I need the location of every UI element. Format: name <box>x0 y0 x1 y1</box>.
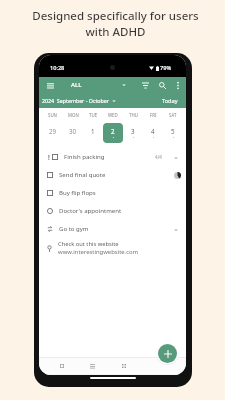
staticText: THU <box>129 112 138 118</box>
staticText: ALL <box>71 81 82 89</box>
button[interactable]: Expand <box>171 225 180 234</box>
staticText: SUN <box>48 112 57 118</box>
button[interactable]: Tasks <box>56 360 67 371</box>
button[interactable]: Expand <box>171 153 180 162</box>
button[interactable]: Search <box>157 80 168 91</box>
button[interactable]: Go to gym <box>39 220 186 238</box>
staticText: Buy flip flops <box>59 189 96 197</box>
staticText: Go to gym <box>59 225 89 233</box>
staticText: ! <box>48 153 50 161</box>
staticText: 3 <box>131 127 135 135</box>
button[interactable]: 1 <box>83 122 103 144</box>
staticText: www.interestingwebsite.com <box>58 248 139 256</box>
button[interactable]: 5 <box>163 122 183 144</box>
staticText: Finish packing <box>64 153 105 161</box>
button[interactable]: Expand list <box>119 80 129 90</box>
button[interactable]: Dashboard <box>118 360 129 371</box>
button[interactable]: Send final quote <box>39 166 186 184</box>
staticText: Doctor's appointment <box>59 207 122 215</box>
staticText: 30 <box>69 127 77 135</box>
staticText: 2024 September - October <box>42 97 110 104</box>
button[interactable]: 2024 September - October <box>42 97 116 104</box>
staticText: 29 <box>49 127 57 135</box>
button[interactable]: 3 <box>123 122 143 144</box>
staticText: SAT <box>169 112 177 118</box>
button[interactable]: ! <box>39 148 186 166</box>
staticText: 4 <box>151 127 155 135</box>
button[interactable]: 2 <box>103 122 123 144</box>
button[interactable]: Filter <box>140 80 151 91</box>
staticText: 4/4 <box>155 154 162 160</box>
button[interactable]: 30 <box>63 122 83 144</box>
staticText: MON <box>68 112 79 118</box>
button[interactable]: Lists <box>87 360 98 371</box>
button[interactable]: Add task <box>158 344 177 363</box>
staticText: 2 <box>111 127 115 135</box>
staticText: 1 <box>91 127 95 135</box>
staticText: Check out this website <box>58 240 119 248</box>
staticText: Designed specifically for users with ADH… <box>32 8 199 40</box>
staticText: WED <box>108 112 118 118</box>
staticText: 79% <box>160 64 172 72</box>
button[interactable]: Today <box>160 97 180 105</box>
button[interactable]: Menu <box>45 80 56 91</box>
staticText: FRI <box>150 112 157 118</box>
button[interactable]: 4 <box>143 122 163 144</box>
staticText: TUE <box>89 112 98 118</box>
button[interactable]: Buy flip flops <box>39 184 186 202</box>
button[interactable]: 29 <box>42 122 63 144</box>
staticText: 10:28 <box>50 64 65 72</box>
staticText: Send final quote <box>59 171 106 179</box>
button[interactable]: More options <box>172 80 183 91</box>
button[interactable]: Check out this website <box>39 238 186 258</box>
staticText: 5 <box>171 127 175 135</box>
staticText: Today <box>162 97 178 105</box>
button[interactable]: Doctor's appointment <box>39 202 186 220</box>
